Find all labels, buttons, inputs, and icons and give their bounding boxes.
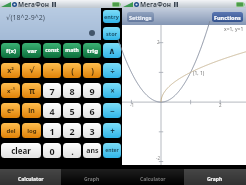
staticText: ln bbox=[28, 106, 35, 116]
button[interactable]: × bbox=[103, 83, 121, 98]
button[interactable]: + bbox=[103, 123, 121, 138]
button[interactable]: ʳ bbox=[43, 63, 61, 78]
staticText: + bbox=[110, 125, 115, 136]
staticText: -1 bbox=[130, 102, 135, 108]
button[interactable]: entry bbox=[103, 10, 120, 23]
staticText: 3 bbox=[89, 125, 95, 137]
button[interactable]: 6 bbox=[83, 103, 101, 118]
button[interactable]: clear bbox=[1, 143, 41, 158]
staticText: МегаФон bbox=[140, 0, 172, 8]
button[interactable]: eˣ bbox=[1, 103, 20, 118]
button[interactable]: ( bbox=[63, 63, 81, 78]
button[interactable]: 8 bbox=[63, 83, 81, 98]
button[interactable]: ÷ bbox=[103, 63, 121, 78]
staticText: МегаФон bbox=[18, 0, 50, 8]
staticText: x=1, y=1 bbox=[224, 26, 244, 33]
staticText: √(18^2-9^2) bbox=[6, 13, 45, 23]
staticText: Graph bbox=[207, 176, 223, 183]
staticText: − bbox=[110, 105, 115, 116]
staticText: ʳ bbox=[51, 66, 54, 76]
staticText: Functions bbox=[214, 14, 241, 21]
staticText: clear bbox=[11, 145, 31, 156]
button[interactable]: − bbox=[103, 103, 121, 118]
staticText: math bbox=[65, 47, 79, 54]
staticText: 2 bbox=[219, 102, 222, 108]
staticText: x² bbox=[7, 66, 14, 76]
staticText: 4 bbox=[49, 105, 55, 117]
staticText: Calculator bbox=[140, 176, 166, 183]
staticText: ( bbox=[71, 65, 74, 76]
staticText: . bbox=[71, 145, 74, 157]
button[interactable]: Graph bbox=[184, 169, 246, 185]
staticText: 7 bbox=[49, 85, 55, 97]
staticText: enter bbox=[105, 147, 119, 154]
button[interactable]: var bbox=[22, 43, 41, 58]
staticText: entry bbox=[104, 13, 119, 20]
staticText: 6 bbox=[89, 105, 95, 117]
staticText: 5 bbox=[69, 105, 75, 117]
button[interactable]: f(x) bbox=[1, 43, 20, 58]
staticText: 8 bbox=[69, 85, 75, 97]
staticText: ∧ bbox=[108, 46, 116, 56]
staticText: eˣ bbox=[7, 106, 14, 116]
button[interactable]: Calculator bbox=[0, 169, 61, 185]
button[interactable]: 0 bbox=[43, 143, 61, 158]
staticText: (1, 1) bbox=[193, 70, 205, 77]
button[interactable]: Calculator bbox=[122, 169, 184, 185]
button[interactable]: enter bbox=[103, 143, 121, 158]
staticText: trig bbox=[87, 47, 98, 55]
button[interactable]: ans bbox=[83, 143, 101, 158]
button[interactable]: 3 bbox=[83, 123, 101, 138]
staticText: 0 bbox=[49, 145, 55, 157]
staticText: ans bbox=[86, 146, 99, 156]
staticText: log bbox=[27, 127, 37, 135]
staticText: 2 bbox=[69, 125, 75, 137]
staticText: ) bbox=[91, 65, 94, 76]
button[interactable]: ∧ bbox=[103, 43, 121, 58]
staticText: √ bbox=[29, 66, 35, 75]
staticText: ÷ bbox=[110, 65, 115, 76]
button[interactable]: Settings bbox=[127, 12, 154, 22]
staticText: Graph bbox=[84, 176, 100, 183]
button[interactable]: 7 bbox=[43, 83, 61, 98]
button[interactable]: stor bbox=[103, 27, 120, 40]
staticText: var bbox=[27, 47, 37, 55]
button[interactable]: Graph bbox=[61, 169, 122, 185]
staticText: del bbox=[6, 127, 16, 135]
staticText: f(x) bbox=[6, 47, 16, 55]
button[interactable]: x² bbox=[1, 63, 20, 78]
staticText: const bbox=[45, 47, 59, 54]
button[interactable]: ln bbox=[22, 103, 41, 118]
button[interactable]: del bbox=[1, 123, 20, 138]
button[interactable]: 5 bbox=[63, 103, 81, 118]
button[interactable]: x⁻¹ bbox=[1, 83, 20, 98]
button[interactable]: 2 bbox=[63, 123, 81, 138]
staticText: -2 bbox=[156, 155, 161, 161]
staticText: 1 bbox=[49, 125, 55, 137]
staticText: Settings bbox=[129, 14, 152, 21]
button[interactable]: √ bbox=[22, 63, 41, 78]
staticText: π bbox=[29, 85, 35, 96]
button[interactable]: 1 bbox=[43, 123, 61, 138]
button[interactable]: trig bbox=[83, 43, 101, 58]
button[interactable]: 4 bbox=[43, 103, 61, 118]
button[interactable]: ) bbox=[83, 63, 101, 78]
button[interactable]: 9 bbox=[83, 83, 101, 98]
staticText: Calculator bbox=[18, 176, 44, 183]
button[interactable]: Functions bbox=[212, 12, 243, 22]
staticText: × bbox=[110, 85, 115, 96]
staticText: 9 bbox=[89, 85, 95, 97]
staticText: 2 bbox=[157, 39, 160, 45]
staticText: stor bbox=[106, 30, 118, 37]
button[interactable]: π bbox=[22, 83, 41, 98]
button[interactable]: math bbox=[63, 43, 81, 58]
button[interactable]: log bbox=[22, 123, 41, 138]
staticText: x⁻¹ bbox=[7, 87, 15, 95]
button[interactable]: . bbox=[63, 143, 81, 158]
button[interactable]: const bbox=[43, 43, 61, 58]
